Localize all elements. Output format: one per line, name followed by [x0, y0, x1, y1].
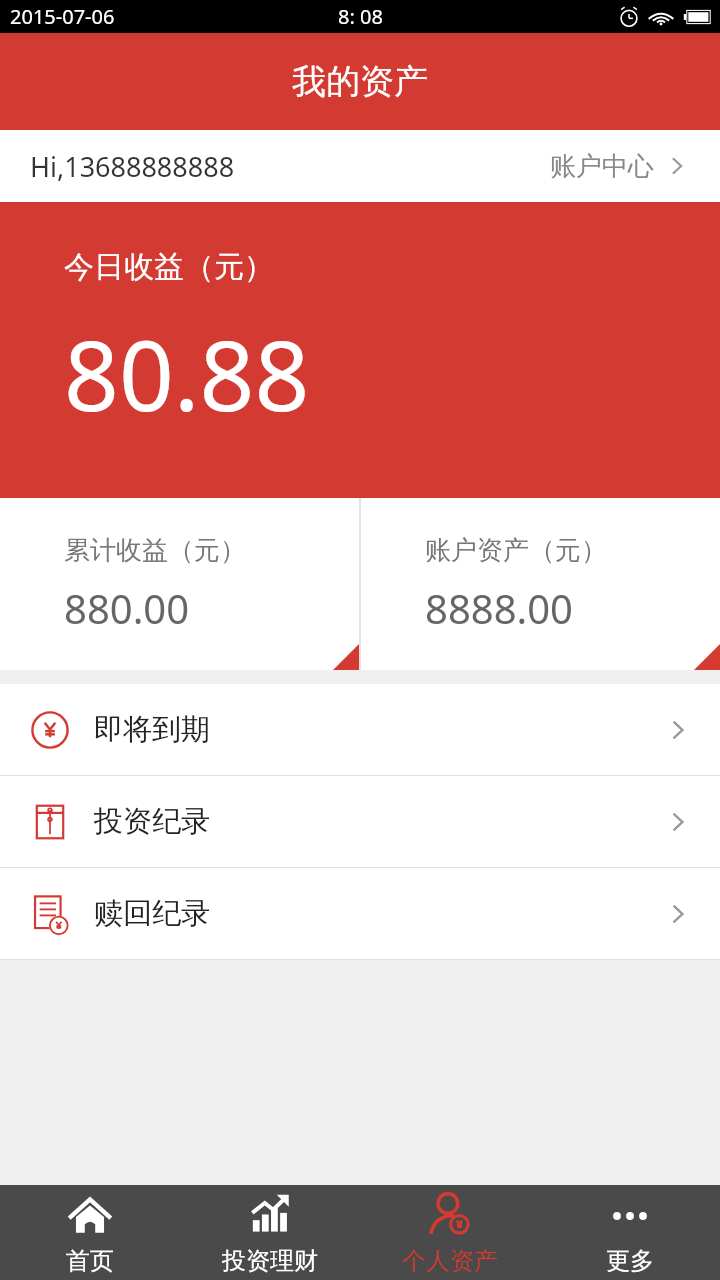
staticText: 今日收益（元）	[64, 248, 274, 286]
button[interactable]: 更多	[540, 1185, 720, 1280]
staticText: 个人资产	[402, 1246, 498, 1276]
button[interactable]: 即将到期	[0, 684, 720, 775]
staticText: 赎回纪录	[94, 895, 210, 932]
staticText: 我的资产	[292, 60, 428, 103]
staticText: Hi,13688888888	[30, 148, 235, 185]
staticText: 首页	[66, 1246, 114, 1276]
staticText: 8: 08	[338, 3, 383, 30]
staticText: 账户资产（元）	[425, 534, 607, 567]
staticText: 即将到期	[94, 711, 210, 748]
staticText: 2015-07-06	[10, 3, 115, 30]
staticText: 账户中心	[550, 150, 654, 183]
button[interactable]: 投资纪录	[0, 776, 720, 867]
staticText: 880.00	[64, 581, 190, 635]
button[interactable]: 赎回纪录	[0, 868, 720, 959]
staticText: 累计收益（元）	[64, 534, 246, 567]
button[interactable]: 首页	[0, 1185, 180, 1280]
button[interactable]: 个人资产	[360, 1185, 540, 1280]
staticText: 8888.00	[425, 581, 573, 635]
button[interactable]: 投资理财	[180, 1185, 360, 1280]
staticText: 80.88	[64, 308, 310, 439]
staticText: 更多	[606, 1246, 654, 1276]
button[interactable]: 账户资产（元）	[361, 498, 720, 670]
staticText: 投资纪录	[94, 803, 210, 840]
button[interactable]: Hi,13688888888	[0, 130, 720, 202]
staticText: 投资理财	[222, 1246, 318, 1276]
button[interactable]: 累计收益（元）	[0, 498, 359, 670]
